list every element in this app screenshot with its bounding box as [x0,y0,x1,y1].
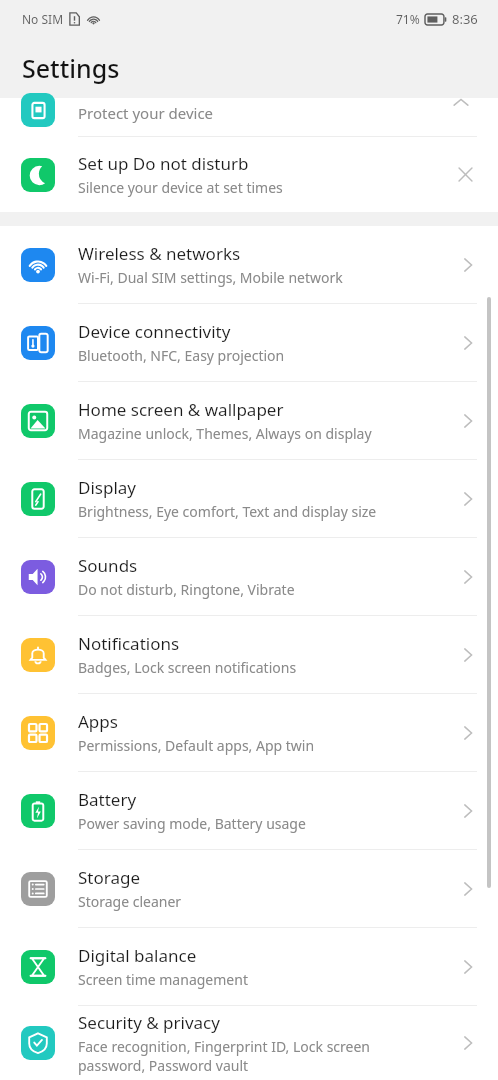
other: Device connectivity [460,335,476,351]
button[interactable]: Notifications [0,616,498,693]
other: Dismiss [457,166,474,183]
other: Battery [460,803,476,819]
staticText: Face recognition, Fingerprint ID, Lock s… [78,1037,370,1075]
button[interactable]: Security & privacy [0,1006,498,1080]
staticText: Screen time management [78,970,248,989]
staticText: Storage [78,866,141,889]
button[interactable]: Device connectivity [0,304,498,381]
staticText: Protect your device [78,103,214,123]
staticText: Power saving mode, Battery usage [78,814,306,833]
button[interactable]: Sounds [0,538,498,615]
staticText: Do not disturb, Ringtone, Vibrate [78,580,295,599]
other: Apps [460,725,476,741]
button[interactable]: Battery [0,772,498,849]
staticText: Permissions, Default apps, App twin [78,736,315,755]
staticText: Digital balance [78,944,197,967]
staticText: 8:36 [452,10,478,28]
button[interactable]: Display [0,460,498,537]
button[interactable]: Home screen & wallpaper [0,382,498,459]
staticText: Home screen & wallpaper [78,398,284,421]
staticText: Apps [78,710,118,733]
staticText: Settings [22,51,120,85]
staticText: Wi-Fi, Dual SIM settings, Mobile network [78,268,343,287]
staticText: Wireless & networks [78,242,241,265]
other: Notifications [460,647,476,663]
staticText: Silence your device at set times [78,178,283,197]
button[interactable]: Apps [0,694,498,771]
other: Security & privacy [460,1035,476,1051]
staticText: Bluetooth, NFC, Easy projection [78,346,285,365]
staticText: Sounds [78,554,138,577]
button[interactable]: Wireless & networks [0,226,498,303]
other: Display [460,491,476,507]
staticText: Display [78,476,136,499]
other: Digital balance [460,959,476,975]
staticText: Device connectivity [78,320,231,343]
other: Collapse [452,94,470,112]
staticText: Set up Do not disturb [78,152,249,175]
staticText: No SIM [22,11,64,27]
staticText: Magazine unlock, Themes, Always on displ… [78,424,372,443]
staticText: Storage cleaner [78,892,182,911]
other: Wireless & networks [460,257,476,273]
other: Home screen & wallpaper [460,413,476,429]
staticText: Battery [78,788,137,811]
staticText: 71% [396,11,420,27]
button[interactable]: Protect your device [0,98,498,136]
button[interactable]: Digital balance [0,928,498,1005]
button[interactable]: Storage [0,850,498,927]
staticText: Notifications [78,632,180,655]
other: Sounds [460,569,476,585]
staticText: Security & privacy [78,1011,220,1034]
staticText: Badges, Lock screen notifications [78,658,297,677]
button[interactable]: Set up Do not disturb [0,137,498,212]
staticText: Brightness, Eye comfort, Text and displa… [78,502,377,521]
other: Storage [460,881,476,897]
